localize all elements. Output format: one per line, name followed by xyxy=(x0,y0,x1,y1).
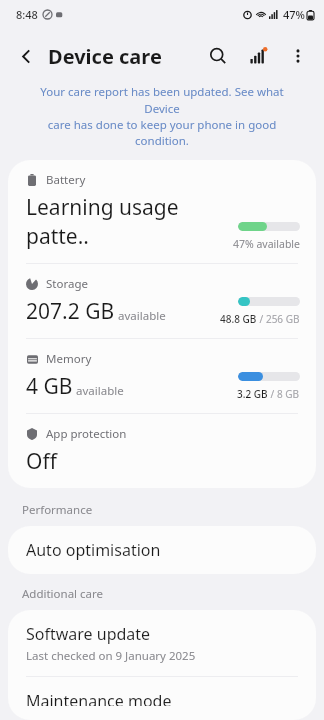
staticText: Software update xyxy=(26,623,151,645)
staticText: App protection xyxy=(46,426,127,442)
staticText: Off xyxy=(26,447,57,476)
staticText: Performance xyxy=(22,502,93,518)
staticText: Learning usage patte.. xyxy=(26,193,233,251)
button[interactable]: Search xyxy=(198,36,238,76)
button[interactable]: Back xyxy=(6,36,46,76)
staticText: 207.2 GB xyxy=(26,297,115,326)
staticText: Additional care xyxy=(22,586,104,602)
button[interactable]: Care report xyxy=(238,36,278,76)
button[interactable]: App protection xyxy=(8,414,316,488)
staticText: / 8 GB xyxy=(268,387,300,401)
staticText: / 256 GB xyxy=(257,312,300,326)
staticText: Memory xyxy=(46,351,92,367)
staticText: 47% available xyxy=(233,237,300,251)
staticText: Your care report has been updated. See w… xyxy=(22,84,302,148)
staticText: 47% xyxy=(283,7,305,22)
button[interactable]: Maintenance mode xyxy=(8,677,316,720)
staticText: Maintenance mode xyxy=(26,690,172,706)
staticText: Storage xyxy=(46,276,88,292)
staticText: 4 GB xyxy=(26,372,73,401)
button[interactable]: Software update xyxy=(8,610,316,676)
button[interactable]: Storage xyxy=(8,264,316,338)
staticText: Battery xyxy=(46,172,86,188)
button[interactable]: Auto optimisation xyxy=(8,526,316,574)
button[interactable]: Battery xyxy=(8,160,316,263)
staticText: 3.2 GB xyxy=(237,387,268,401)
staticText: 8:48 xyxy=(16,7,38,22)
staticText: Device care xyxy=(48,43,162,70)
button[interactable]: More options xyxy=(278,36,318,76)
staticText: available xyxy=(76,383,124,399)
staticText: 48.8 GB xyxy=(220,312,257,326)
staticText: Last checked on 9 January 2025 xyxy=(26,648,196,664)
button[interactable]: Memory xyxy=(8,339,316,413)
staticText: Auto optimisation xyxy=(26,539,161,561)
staticText: available xyxy=(118,308,166,324)
